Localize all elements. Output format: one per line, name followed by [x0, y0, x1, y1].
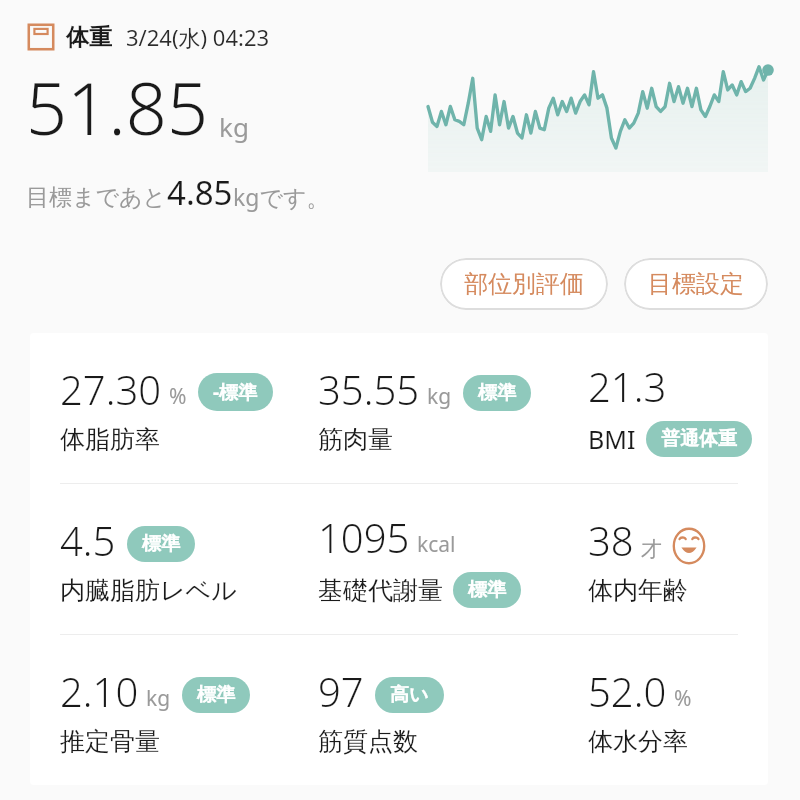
staticText: 27.30 [60, 362, 162, 416]
button[interactable]: 27.30 [60, 362, 273, 455]
staticText: kgです。 [233, 181, 330, 212]
staticText: 目標設定 [648, 269, 744, 299]
staticText: kg [219, 109, 249, 144]
staticText: % [169, 382, 187, 411]
button[interactable]: 目標設定 [624, 258, 768, 310]
staticText: 基礎代謝量 [318, 575, 443, 606]
staticText: kg [427, 382, 452, 411]
staticText: kg [146, 684, 171, 713]
button[interactable]: 38 [588, 513, 708, 606]
staticText: 4.5 [60, 513, 116, 567]
staticText: 部位別評価 [464, 269, 584, 299]
button[interactable]: 部位別評価 [440, 258, 608, 310]
button[interactable]: -標準 [198, 373, 273, 411]
staticText: 35.55 [318, 362, 420, 416]
staticText: 38 [588, 513, 634, 567]
staticText: 4.85 [167, 170, 233, 215]
staticText: 目標まであと [26, 183, 167, 212]
staticText: -標準 [213, 379, 258, 405]
staticText: 2.10 [60, 664, 139, 718]
staticText: 体脂肪率 [60, 424, 160, 455]
staticText: 筋肉量 [318, 424, 393, 455]
button[interactable]: 4.5 [60, 513, 237, 606]
staticText: 筋質点数 [318, 726, 418, 757]
staticText: 体内年齢 [588, 575, 688, 606]
staticText: % [674, 684, 692, 713]
staticText: 52.0 [588, 664, 667, 718]
button[interactable]: 標準 [182, 677, 250, 713]
staticText: 普通体重 [661, 427, 737, 451]
staticText: kcal [417, 530, 456, 559]
staticText: BMI [588, 422, 636, 456]
button[interactable]: 52.0 [588, 664, 692, 757]
staticText: 高い [390, 683, 429, 707]
button[interactable]: 普通体重 [646, 421, 752, 457]
button[interactable]: 標準 [463, 375, 531, 411]
staticText: 推定骨量 [60, 726, 160, 757]
staticText: 内臓脂肪レベル [60, 575, 237, 606]
staticText: 97 [318, 664, 364, 718]
button[interactable]: 標準 [453, 572, 521, 608]
other: Body age rating [670, 527, 708, 565]
staticText: 体重 [66, 23, 112, 52]
staticText: 標準 [478, 381, 516, 405]
button[interactable]: 標準 [127, 526, 195, 562]
staticText: 標準 [468, 578, 506, 602]
button[interactable]: 高い [375, 677, 444, 713]
button[interactable]: 97 [318, 664, 444, 757]
staticText: 才 [641, 536, 662, 562]
staticText: 21.3 [588, 359, 667, 413]
other: Weight scale [26, 22, 56, 52]
staticText: 体水分率 [588, 726, 688, 757]
button[interactable]: 2.10 [60, 664, 250, 757]
button[interactable]: 35.55 [318, 362, 531, 455]
staticText: 標準 [142, 532, 180, 556]
staticText: 3/24(水) 04:23 [126, 22, 270, 52]
button[interactable]: 1095 [318, 510, 521, 608]
staticText: 1095 [318, 510, 410, 564]
button[interactable]: 21.3 [588, 359, 752, 457]
staticText: 標準 [197, 683, 235, 707]
staticText: 51.85 [26, 58, 209, 156]
